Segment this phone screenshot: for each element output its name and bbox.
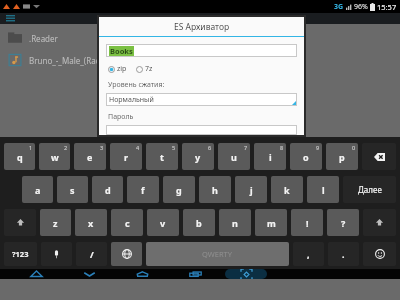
staticText: u — [231, 151, 237, 163]
button[interactable]: .Reader — [0, 29, 400, 47]
button[interactable]: Voice input — [41, 242, 72, 266]
staticText: w — [51, 151, 59, 163]
button[interactable]: i — [254, 143, 286, 170]
staticText: r — [124, 151, 129, 163]
staticText: 15:57 — [377, 2, 397, 12]
staticText: c — [125, 217, 130, 229]
button[interactable]: a — [22, 176, 53, 203]
button[interactable]: Shift — [4, 209, 36, 236]
button[interactable]: ? — [327, 209, 359, 236]
button[interactable]: t — [146, 143, 178, 170]
staticText: q — [17, 151, 23, 163]
staticText: ? — [341, 217, 346, 229]
staticText: j — [250, 184, 253, 196]
button[interactable]: r — [110, 143, 142, 170]
staticText: v — [160, 217, 166, 229]
staticText: 8 — [280, 144, 284, 151]
button[interactable]: d — [92, 176, 123, 203]
button[interactable]: w — [39, 143, 70, 170]
staticText: ?123 — [12, 249, 29, 259]
button[interactable]: z — [40, 209, 71, 236]
staticText: ▢ — [219, 15, 225, 22]
staticText: 5 — [172, 144, 176, 151]
staticText: Устройство — [185, 15, 215, 22]
button[interactable] — [106, 125, 297, 135]
staticText: 2 — [64, 144, 68, 151]
button[interactable]: Далее — [343, 176, 396, 203]
staticText: 3G — [334, 2, 344, 12]
button[interactable]: v — [147, 209, 179, 236]
staticText: Далее — [358, 184, 382, 195]
staticText: n — [232, 217, 238, 229]
button[interactable]: f — [127, 176, 159, 203]
button[interactable]: x — [75, 209, 107, 236]
staticText: x — [88, 217, 94, 229]
staticText: f — [141, 184, 145, 196]
staticText: h — [212, 184, 218, 196]
staticText: ▢ — [175, 15, 181, 22]
staticText: 6 — [208, 144, 212, 151]
button[interactable]: Screenshot — [222, 269, 270, 279]
button[interactable]: Backspace — [362, 143, 396, 170]
button[interactable]: / — [76, 242, 107, 266]
staticText: ES Архиватор — [174, 21, 230, 33]
button[interactable]: Up — [10, 269, 63, 279]
button[interactable]: ! — [291, 209, 323, 236]
button[interactable]: b — [183, 209, 215, 236]
staticText: t — [160, 151, 164, 163]
staticText: z — [53, 217, 58, 229]
button[interactable]: Shift — [363, 209, 396, 236]
staticText: 4 — [136, 144, 140, 151]
button[interactable]: n — [219, 209, 251, 236]
staticText: 96% — [354, 2, 368, 12]
staticText: Books — [110, 46, 133, 56]
button[interactable]: Space — [146, 242, 289, 266]
button[interactable]: Bruno_-_Male_(Radio_ — [0, 51, 400, 69]
button[interactable]: 7z — [136, 64, 153, 74]
staticText: Уровень сжатия: — [108, 80, 165, 90]
button[interactable]: h — [199, 176, 231, 203]
staticText: e — [87, 151, 93, 163]
staticText: 7z — [145, 64, 153, 74]
staticText: . — [342, 248, 345, 260]
button[interactable]: Home — [116, 269, 169, 279]
button[interactable]: Recents — [169, 269, 222, 279]
button[interactable]: j — [235, 176, 267, 203]
button[interactable]: s — [57, 176, 88, 203]
staticText: / — [90, 248, 94, 260]
button[interactable]: Books — [106, 44, 297, 57]
button[interactable]: Menu — [6, 15, 15, 22]
staticText: p — [339, 151, 345, 163]
button[interactable]: Change language — [111, 242, 142, 266]
button[interactable]: Нормальный — [106, 93, 297, 106]
button[interactable]: g — [163, 176, 195, 203]
staticText: Нормальный — [109, 95, 154, 105]
button[interactable]: ?123 — [4, 242, 37, 266]
button[interactable]: p — [326, 143, 358, 170]
staticText: QWERTY — [202, 249, 233, 259]
staticText: ! — [306, 217, 309, 229]
staticText: k — [284, 184, 290, 196]
button[interactable]: c — [111, 209, 143, 236]
button[interactable]: e — [74, 143, 106, 170]
button[interactable]: m — [255, 209, 287, 236]
button[interactable]: y — [182, 143, 214, 170]
button[interactable]: Hide keyboard — [63, 269, 116, 279]
staticText: o — [303, 151, 309, 163]
button[interactable]: k — [271, 176, 303, 203]
button[interactable]: u — [218, 143, 250, 170]
staticText: g — [176, 184, 182, 196]
staticText: 3 — [100, 144, 104, 151]
staticText: .Reader — [29, 33, 58, 44]
button[interactable]: l — [307, 176, 339, 203]
button[interactable]: o — [290, 143, 322, 170]
button[interactable]: zip — [108, 64, 127, 74]
staticText: Пароль — [108, 112, 134, 122]
staticText: l — [322, 184, 325, 196]
staticText: y — [195, 151, 201, 163]
button[interactable]: . — [328, 242, 359, 266]
staticText: zip — [117, 64, 127, 74]
button[interactable]: Emoji — [363, 242, 396, 266]
button[interactable]: , — [293, 242, 324, 266]
button[interactable]: q — [4, 143, 35, 170]
